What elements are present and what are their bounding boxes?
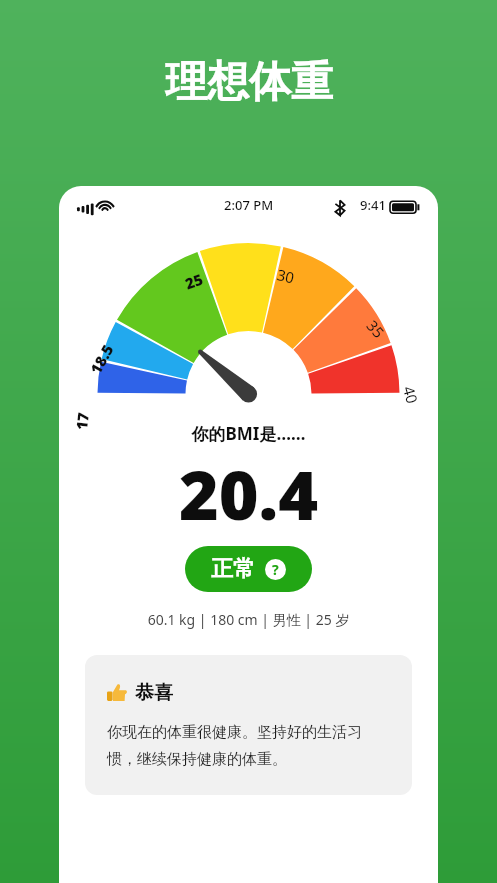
button[interactable]: 正常 <box>185 546 312 592</box>
staticText: 2:07 PM <box>224 196 274 214</box>
staticText: 35 <box>362 316 389 342</box>
staticText: 20.4 <box>59 447 438 540</box>
staticText: 30 <box>275 264 297 288</box>
staticText: 25 <box>182 269 206 293</box>
other: Help <box>265 559 286 580</box>
staticText: 理想体重 <box>165 56 333 109</box>
button[interactable]: 恭喜 <box>85 655 412 795</box>
staticText: 恭喜 <box>135 681 173 705</box>
staticText: 9:41 <box>360 196 386 214</box>
staticText: 17 <box>71 411 93 431</box>
staticText: 18.5 <box>85 341 118 377</box>
staticText: 你现在的体重很健康。坚持好的生活习惯，继续保持健康的体重。 <box>107 723 390 769</box>
staticText: 60.1 kg | 180 cm | 男性 | 25 岁 <box>59 610 438 629</box>
staticText: ? <box>272 560 279 579</box>
staticText: 40 <box>399 384 423 406</box>
staticText: 你的BMI是…… <box>59 422 438 445</box>
staticText: 正常 <box>211 555 255 583</box>
